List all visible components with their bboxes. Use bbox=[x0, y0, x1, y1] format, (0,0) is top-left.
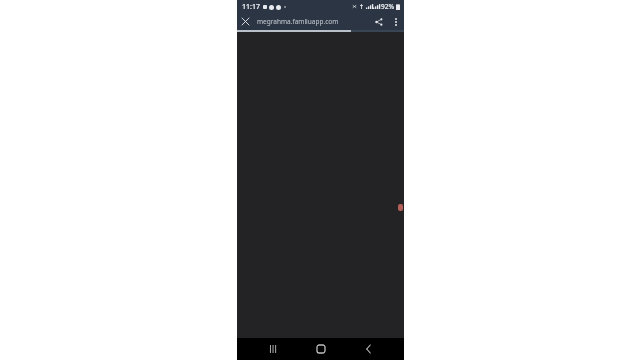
button[interactable]: megrahma.famliuapp.com bbox=[257, 13, 366, 30]
staticText: 11:17 bbox=[242, 2, 260, 12]
staticText: megrahma.famliuapp.com bbox=[257, 17, 339, 26]
button[interactable]: More options bbox=[387, 13, 404, 30]
button[interactable]: Close bbox=[237, 13, 254, 30]
button[interactable]: Recent apps bbox=[262, 338, 284, 360]
button[interactable]: Home bbox=[310, 338, 332, 360]
button[interactable]: Share bbox=[370, 13, 387, 30]
staticText: 92% bbox=[381, 2, 394, 11]
button[interactable]: Back bbox=[357, 338, 379, 360]
